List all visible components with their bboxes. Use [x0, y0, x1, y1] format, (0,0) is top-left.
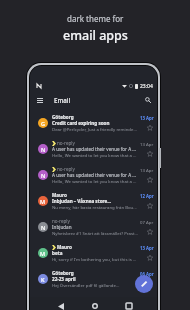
- staticText: K: [41, 276, 45, 283]
- button[interactable]: M: [30, 188, 157, 214]
- staticText: Göteborg: [52, 114, 74, 120]
- button[interactable]: Menu: [35, 95, 45, 105]
- button[interactable]: Search: [143, 95, 153, 105]
- staticText: G: [41, 120, 45, 127]
- staticText: Hello, We wanted to let you know that a …: [52, 178, 138, 184]
- staticText: Inbjudan: [52, 224, 72, 230]
- staticText: Nyhetsbrev #1 Snärt att lässmället? Pras…: [52, 230, 138, 236]
- staticText: N: [41, 146, 46, 153]
- staticText: Inbjudan – Våxnea store...: [52, 198, 112, 204]
- button[interactable]: Star: [146, 254, 154, 262]
- staticText: Credit card expiring soon: [52, 120, 110, 126]
- button[interactable]: N: [30, 162, 157, 188]
- staticText: Dear @Perlcycler, Just a friendly remind…: [52, 126, 138, 132]
- staticText: 06 Apr: [140, 271, 154, 277]
- staticText: Hi, sorry if I'm bothering you, but this…: [52, 256, 138, 262]
- button[interactable]: Star: [146, 150, 154, 158]
- staticText: dark theme for: [67, 13, 124, 24]
- staticText: 13 Apr: [140, 141, 154, 147]
- staticText: M: [40, 250, 46, 257]
- button[interactable]: Recents: [123, 300, 135, 310]
- staticText: 12 Apr: [140, 193, 154, 199]
- button[interactable]: Compose: [135, 275, 153, 293]
- staticText: M: [40, 198, 46, 205]
- button[interactable]: N: [30, 214, 157, 240]
- staticText: A user has updated their venue for A Swi…: [52, 172, 138, 178]
- button[interactable]: Star: [146, 202, 154, 210]
- button[interactable]: Star: [146, 228, 154, 236]
- staticText: no-reply: [52, 218, 70, 224]
- staticText: 23:04: [140, 83, 153, 90]
- button[interactable]: G: [30, 110, 157, 136]
- staticText: 13 Apr: [140, 245, 154, 251]
- staticText: Hej Översändler pdf fil gällande...: [52, 282, 120, 288]
- staticText: 22-23 april: [52, 276, 76, 282]
- staticText: Nu meny, här basta restaurang från Bou..…: [52, 204, 137, 210]
- button[interactable]: Star: [146, 280, 154, 288]
- button[interactable]: Star: [146, 124, 154, 132]
- button[interactable]: Home: [89, 300, 101, 310]
- staticText: Mauro: [57, 244, 72, 250]
- staticText: 13 Apr: [140, 115, 154, 121]
- staticText: N: [41, 224, 46, 231]
- staticText: 13 Apr: [140, 167, 154, 173]
- button[interactable]: N: [30, 136, 157, 162]
- staticText: Göteborg: [52, 270, 74, 276]
- staticText: email apps: [63, 27, 128, 44]
- button[interactable]: K: [30, 266, 157, 292]
- staticText: A user has updated their venue for A Swi…: [52, 146, 138, 152]
- staticText: beta: [52, 250, 63, 256]
- staticText: no-reply: [57, 140, 75, 146]
- button[interactable]: Back: [55, 300, 67, 310]
- button[interactable]: Star: [146, 176, 154, 184]
- button[interactable]: M: [30, 240, 157, 266]
- staticText: Hello, We wanted to let you know that a …: [52, 152, 138, 158]
- staticText: 07 Apr: [140, 219, 154, 225]
- staticText: Email: [54, 96, 71, 104]
- staticText: no-reply: [57, 166, 75, 172]
- staticText: N: [41, 172, 46, 179]
- staticText: Mauro: [52, 192, 67, 198]
